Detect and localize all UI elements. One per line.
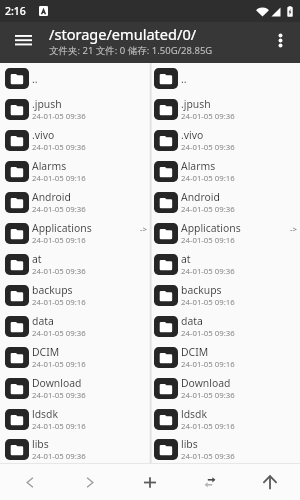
button[interactable]: Forward bbox=[60, 464, 120, 500]
staticText: Applications bbox=[32, 221, 92, 235]
staticText: Alarms bbox=[32, 159, 67, 173]
staticText: libs bbox=[32, 437, 49, 451]
button[interactable]: .jpush bbox=[0, 94, 149, 125]
button[interactable]: Up bbox=[240, 464, 300, 500]
button[interactable]: Android bbox=[152, 187, 300, 218]
staticText: Android bbox=[32, 190, 71, 204]
button[interactable]: Applications bbox=[152, 218, 300, 249]
button[interactable]: .. bbox=[0, 63, 149, 94]
staticText: .vivo bbox=[32, 128, 55, 142]
staticText: 24-01-05 09:16 bbox=[181, 421, 235, 432]
button[interactable]: DCIM bbox=[152, 342, 300, 373]
staticText: backups bbox=[181, 283, 222, 297]
staticText: 24-01-05 09:36 bbox=[181, 204, 235, 215]
button[interactable]: New folder bbox=[120, 464, 180, 500]
button[interactable]: ldsdk bbox=[152, 404, 300, 435]
button[interactable]: .vivo bbox=[0, 125, 149, 156]
staticText: .. bbox=[32, 72, 38, 86]
staticText: ldsdk bbox=[181, 407, 207, 421]
staticText: Applications bbox=[181, 221, 241, 235]
staticText: DCIM bbox=[32, 345, 60, 359]
button[interactable]: .jpush bbox=[152, 94, 300, 125]
button[interactable]: backups bbox=[0, 280, 149, 311]
button[interactable]: DCIM bbox=[0, 342, 149, 373]
staticText: backups bbox=[32, 283, 73, 297]
staticText: 24-01-05 09:36 bbox=[32, 111, 86, 122]
button[interactable]: More options bbox=[260, 22, 300, 63]
staticText: 24-01-05 09:16 bbox=[181, 359, 235, 370]
button[interactable]: Android bbox=[0, 187, 149, 218]
staticText: 24-01-05 09:16 bbox=[181, 173, 235, 184]
staticText: 24-01-05 09:36 bbox=[181, 111, 235, 122]
staticText: data bbox=[181, 314, 203, 328]
staticText: 2:16 bbox=[5, 4, 26, 18]
staticText: libs bbox=[181, 437, 198, 451]
staticText: -> bbox=[140, 224, 147, 235]
staticText: ldsdk bbox=[32, 407, 58, 421]
button[interactable]: Applications bbox=[0, 218, 149, 249]
staticText: 24-01-05 09:16 bbox=[32, 359, 86, 370]
button[interactable]: ldsdk bbox=[0, 404, 149, 435]
button[interactable]: .vivo bbox=[152, 125, 300, 156]
staticText: 24-01-05 09:36 bbox=[32, 266, 86, 277]
staticText: 24-01-05 09:36 bbox=[181, 266, 235, 277]
staticText: Download bbox=[32, 376, 82, 390]
button[interactable]: libs bbox=[0, 435, 149, 463]
button[interactable]: .. bbox=[152, 63, 300, 94]
button[interactable]: libs bbox=[152, 435, 300, 463]
button[interactable]: Download bbox=[0, 373, 149, 404]
staticText: 24-01-05 09:36 bbox=[32, 451, 86, 462]
staticText: /storage/emulated/0/ bbox=[49, 24, 197, 44]
staticText: Download bbox=[181, 376, 231, 390]
staticText: 24-01-05 09:36 bbox=[32, 142, 86, 153]
button[interactable]: at bbox=[152, 249, 300, 280]
staticText: 24-01-05 09:16 bbox=[32, 235, 86, 246]
staticText: .. bbox=[181, 72, 187, 86]
staticText: 24-01-05 09:36 bbox=[181, 328, 235, 339]
staticText: 24-01-05 09:16 bbox=[32, 421, 86, 432]
staticText: 24-01-05 09:16 bbox=[181, 235, 235, 246]
button[interactable]: Download bbox=[152, 373, 300, 404]
staticText: at bbox=[32, 252, 42, 266]
staticText: data bbox=[32, 314, 54, 328]
button[interactable]: Alarms bbox=[0, 156, 149, 187]
staticText: 24-01-05 09:16 bbox=[32, 297, 86, 308]
staticText: -> bbox=[290, 224, 297, 235]
staticText: 24-01-05 09:16 bbox=[181, 297, 235, 308]
staticText: .jpush bbox=[32, 97, 62, 111]
staticText: Alarms bbox=[181, 159, 216, 173]
button[interactable]: backups bbox=[152, 280, 300, 311]
button[interactable]: data bbox=[0, 311, 149, 342]
button[interactable]: Back bbox=[0, 464, 60, 500]
button[interactable]: Swap panes bbox=[180, 464, 240, 500]
button[interactable]: Alarms bbox=[152, 156, 300, 187]
staticText: .vivo bbox=[181, 128, 204, 142]
staticText: Android bbox=[181, 190, 220, 204]
staticText: 24-01-05 09:36 bbox=[181, 390, 235, 401]
button[interactable]: Menu bbox=[0, 22, 46, 63]
staticText: .jpush bbox=[181, 97, 211, 111]
staticText: at bbox=[181, 252, 191, 266]
staticText: 24-01-05 09:36 bbox=[181, 451, 235, 462]
staticText: 文件夹: 21 文件: 0 储存: 1.50G/28.85G bbox=[49, 44, 213, 57]
staticText: 24-01-05 09:36 bbox=[32, 328, 86, 339]
staticText: DCIM bbox=[181, 345, 209, 359]
staticText: 24-01-05 09:36 bbox=[32, 204, 86, 215]
staticText: 24-01-05 09:36 bbox=[181, 142, 235, 153]
staticText: 24-01-05 09:36 bbox=[32, 390, 86, 401]
staticText: 24-01-05 09:16 bbox=[32, 173, 86, 184]
button[interactable]: at bbox=[0, 249, 149, 280]
button[interactable]: data bbox=[152, 311, 300, 342]
